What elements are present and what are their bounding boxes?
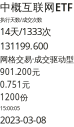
staticText: 131199.600 [0,40,48,52]
staticText: 901.200元 [0,67,40,77]
staticText: 15:00:05 [0,104,20,112]
staticText: 0.751元 [0,79,30,90]
staticText: 2023-03-08 [0,114,46,126]
staticText: 14天/1333次 [0,25,51,38]
staticText: 执行天数/成交次数 [0,16,42,23]
staticText: 中概互联网ETF [0,0,73,14]
staticText: 网格交易·成交驱动型 [0,54,74,65]
staticText: 1200份 [0,92,28,102]
